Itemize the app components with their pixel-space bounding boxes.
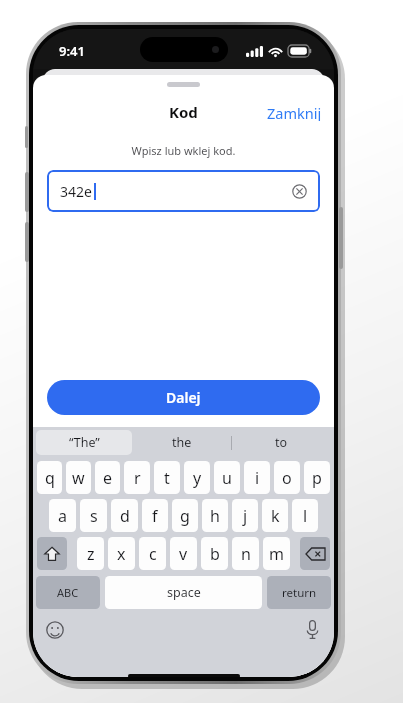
button[interactable]: space [105, 576, 262, 609]
button[interactable]: e [95, 461, 120, 494]
button[interactable]: i [244, 461, 270, 494]
button[interactable]: p [304, 461, 330, 494]
button[interactable]: y [184, 461, 210, 494]
button[interactable]: z [77, 537, 104, 570]
button[interactable]: h [202, 499, 228, 532]
staticText: i [255, 467, 260, 489]
button[interactable]: d [111, 499, 138, 532]
staticText: h [210, 505, 220, 527]
staticText: q [45, 467, 55, 489]
staticText: k [271, 505, 280, 527]
staticText: to [275, 434, 288, 451]
staticText: the [172, 434, 192, 451]
staticText: d [120, 505, 130, 527]
staticText: y [193, 467, 202, 489]
button[interactable]: n [232, 537, 259, 570]
button[interactable]: the [132, 430, 231, 455]
staticText: c [149, 543, 157, 565]
staticText: z [87, 543, 95, 565]
staticText: j [243, 505, 248, 527]
staticText: t [164, 467, 170, 489]
button[interactable]: Zamknij [255, 99, 334, 125]
staticText: Wpisz lub wklej kod. [33, 143, 334, 158]
button[interactable]: Dyktowanie [299, 616, 325, 642]
button[interactable]: s [80, 499, 107, 532]
staticText: b [210, 543, 220, 565]
button[interactable]: Wyczyść [286, 178, 312, 204]
button[interactable]: r [124, 461, 150, 494]
staticText: u [222, 467, 232, 489]
button[interactable]: w [66, 461, 91, 494]
button[interactable]: v [170, 537, 197, 570]
staticText: o [282, 467, 292, 489]
button[interactable]: b [201, 537, 228, 570]
staticText: space [167, 584, 201, 601]
button[interactable]: x [108, 537, 135, 570]
button[interactable]: a [49, 499, 76, 532]
button[interactable]: u [214, 461, 240, 494]
button[interactable]: q [37, 461, 62, 494]
staticText: v [179, 543, 188, 565]
button[interactable]: t [154, 461, 180, 494]
staticText: ABC [57, 585, 79, 600]
staticText: Dalej [166, 388, 201, 407]
staticText: Kod [169, 102, 198, 122]
button[interactable]: return [267, 576, 331, 609]
button[interactable]: Dalej [47, 380, 320, 415]
staticText: “The” [69, 434, 100, 451]
staticText: p [312, 467, 322, 489]
button[interactable]: o [274, 461, 300, 494]
staticText: 342e [60, 182, 92, 201]
button[interactable]: l [292, 499, 318, 532]
button[interactable]: j [232, 499, 258, 532]
button[interactable]: to [232, 430, 331, 455]
button[interactable]: Emoji [42, 617, 68, 643]
button[interactable]: c [139, 537, 166, 570]
button[interactable]: g [172, 499, 198, 532]
button[interactable]: m [263, 537, 290, 570]
staticText: 9:41 [59, 42, 85, 60]
staticText: f [152, 505, 158, 527]
button[interactable]: Shift [37, 537, 67, 570]
staticText: x [117, 543, 126, 565]
staticText: m [269, 543, 284, 565]
button[interactable]: k [262, 499, 288, 532]
staticText: Zamknij [267, 103, 322, 121]
staticText: w [72, 467, 85, 489]
button[interactable]: Backspace [300, 537, 330, 570]
staticText: return [282, 585, 317, 601]
button[interactable]: f [142, 499, 168, 532]
button[interactable]: “The” [36, 430, 132, 455]
staticText: n [241, 543, 251, 565]
button[interactable]: ABC [36, 576, 100, 609]
staticText: r [134, 467, 141, 489]
staticText: l [303, 505, 308, 527]
staticText: a [58, 505, 67, 527]
staticText: s [90, 505, 98, 527]
button[interactable]: 342e [47, 170, 320, 212]
staticText: g [180, 505, 190, 527]
staticText: e [103, 467, 113, 489]
